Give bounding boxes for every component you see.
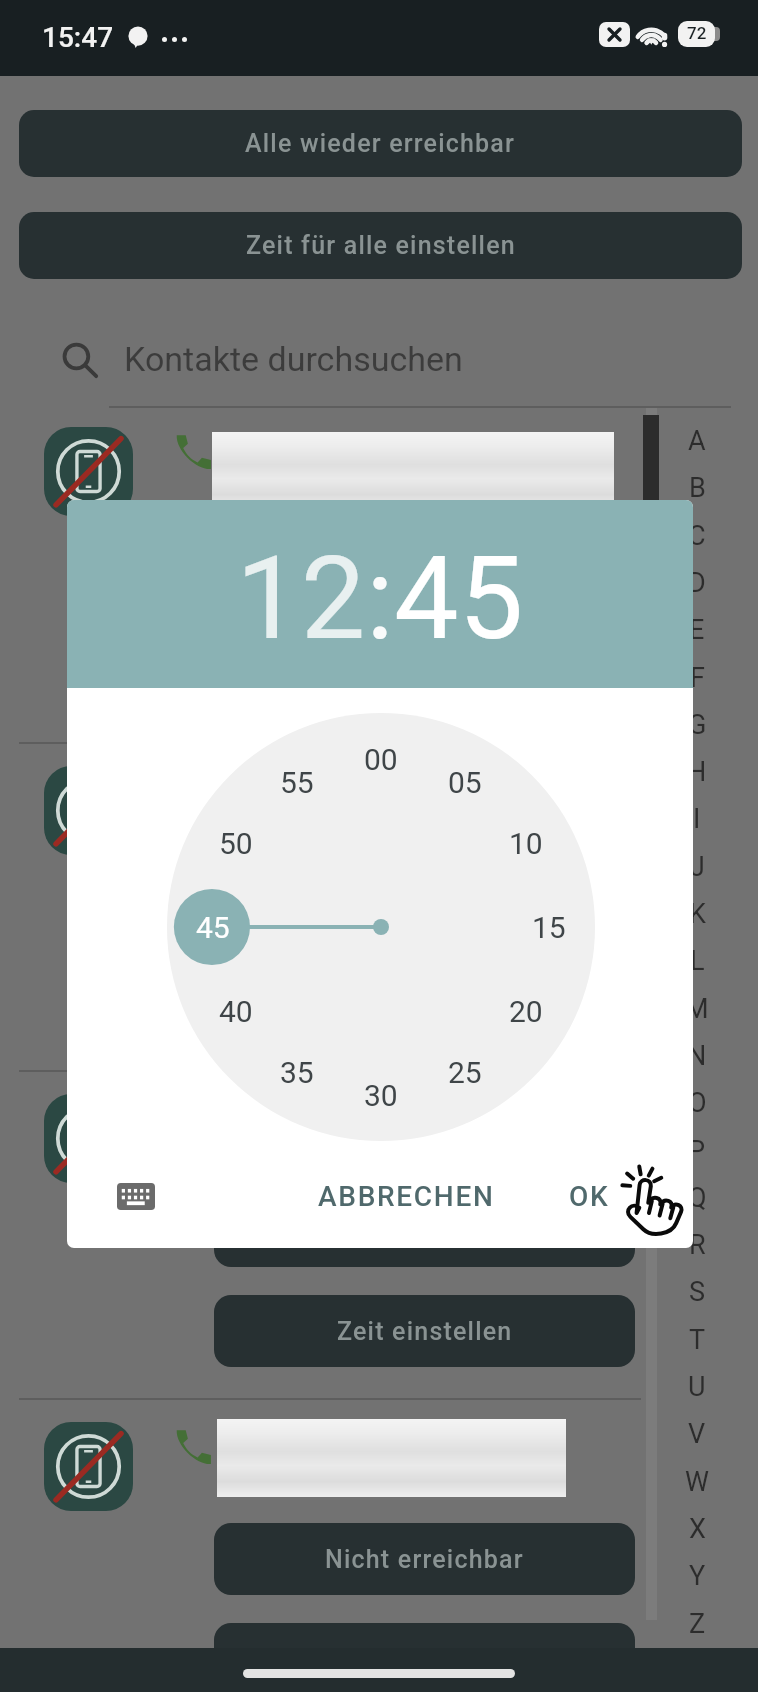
staticText: V [688,1418,706,1450]
staticText: 72 [687,23,707,43]
staticText: 35 [280,1055,314,1090]
button[interactable]: Contact app icon [44,1422,133,1511]
button[interactable]: 00 [347,735,415,783]
button[interactable]: Zeit einstellen [214,628,635,700]
staticText: Zeit einstellen [337,989,513,1018]
button[interactable]: D [676,563,718,603]
button[interactable]: 05 [431,758,499,806]
staticText: S [689,1276,706,1308]
button[interactable]: 15 [515,903,583,951]
button[interactable]: 25 [431,1048,499,1096]
button[interactable]: Nicht erreichbar [214,867,635,939]
button[interactable]: W [676,1462,718,1502]
button[interactable]: Kontakte durchsuchen [40,322,730,398]
button[interactable]: K [676,894,718,934]
button[interactable]: H [676,752,718,792]
staticText: Zeit einstellen [337,1317,513,1346]
button[interactable]: U [676,1367,718,1407]
button[interactable]: 12 [236,531,366,666]
button[interactable]: 45 [179,903,247,951]
button[interactable]: L [676,941,718,981]
button[interactable]: 35 [263,1048,331,1096]
staticText: U [688,1371,706,1403]
button[interactable]: 30 [347,1071,415,1119]
button[interactable]: X [676,1509,718,1549]
staticText: N [687,1040,707,1072]
button[interactable]: Alle wieder erreichbar [19,110,742,177]
staticText: Z [689,1608,706,1640]
staticText: Zeit einstellen [337,1645,513,1674]
staticText: W [685,1466,709,1498]
button[interactable]: Zeit einstellen [214,1295,635,1367]
button[interactable]: A [676,421,718,461]
staticText: : [366,531,394,666]
staticText: 50 [219,826,253,861]
staticText: Alle wieder erreichbar [245,129,516,158]
staticText: T [689,1324,706,1356]
button[interactable]: 45 [394,531,524,666]
button[interactable]: F [676,658,718,698]
button[interactable]: O [676,1083,718,1123]
button[interactable]: V [676,1414,718,1454]
staticText: 20 [509,994,543,1029]
button[interactable]: Zeit einstellen [214,967,635,1039]
staticText: 05 [448,765,482,800]
staticText: 15:47 [42,21,114,54]
staticText: C [688,520,706,552]
button[interactable]: G [676,705,718,745]
staticText: Zeit für alle einstellen [246,231,516,260]
staticText: G [688,709,707,741]
staticText: X [689,1513,706,1545]
button[interactable]: S [676,1272,718,1312]
staticText: Q [688,1182,707,1214]
button[interactable]: R [676,1225,718,1265]
button[interactable]: Z [676,1604,718,1644]
button[interactable]: Nicht erreichbar [214,1523,635,1595]
button[interactable]: Alle wieder erreichbar [214,528,635,600]
button[interactable]: Nicht erreichbar [214,1195,635,1267]
button[interactable]: Y [676,1556,718,1596]
button[interactable]: P [676,1131,718,1171]
staticText: K [689,898,706,930]
staticText: Y [689,1560,706,1592]
staticText: I [693,803,701,835]
button[interactable]: N [676,1036,718,1076]
staticText: O [688,1087,707,1119]
staticText: A [688,425,706,457]
button[interactable]: Switch to keyboard input [112,1175,160,1217]
button[interactable]: E [676,610,718,650]
button[interactable]: Zeit für alle einstellen [19,212,742,279]
staticText: 15 [532,910,566,945]
button[interactable]: Q [676,1178,718,1218]
other: No SIM [599,22,630,47]
button[interactable]: 20 [492,987,560,1035]
staticText: F [690,662,705,694]
button[interactable]: 55 [263,758,331,806]
staticText: B [689,472,706,504]
button[interactable]: 50 [202,819,270,867]
staticText: Nicht erreichbar [325,1545,524,1574]
button[interactable]: 10 [492,819,560,867]
button[interactable]: T [676,1320,718,1360]
button[interactable]: Contact app icon [44,427,133,516]
button[interactable]: OK [534,1164,644,1228]
button[interactable]: B [676,468,718,508]
staticText: P [688,1135,706,1167]
button[interactable]: ABBRECHEN [311,1164,501,1228]
button[interactable]: Zeit einstellen [214,1623,635,1692]
button[interactable]: M [676,989,718,1029]
staticText: OK [569,1180,610,1213]
button[interactable]: J [676,847,718,887]
staticText: 25 [448,1055,482,1090]
staticText: R [689,1229,706,1261]
staticText: H [687,756,707,788]
button[interactable]: 40 [202,987,270,1035]
button[interactable]: I [676,799,718,839]
staticText: Kontakte durchsuchen [124,339,463,379]
button[interactable]: Contact app icon [44,1094,133,1183]
button[interactable]: C [676,516,718,556]
button[interactable]: Contact app icon [44,766,133,855]
